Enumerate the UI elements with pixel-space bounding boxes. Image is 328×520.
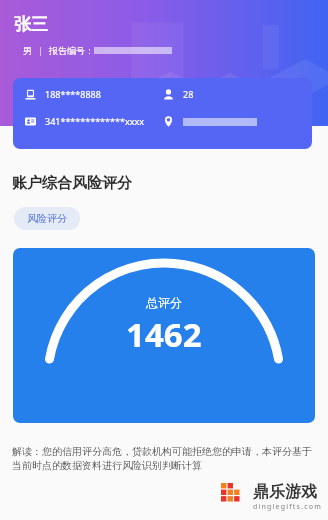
staticText: |	[38, 44, 43, 56]
staticText: 341*************xxxx	[45, 115, 144, 127]
staticText: 鼎乐游戏	[253, 482, 317, 502]
staticText: 张三	[14, 14, 48, 35]
staticText: 总评分	[146, 295, 182, 310]
staticText: 男	[23, 45, 32, 56]
staticText: 报告编号：	[49, 45, 94, 56]
staticText: 188****8888	[45, 88, 101, 100]
staticText: 1462	[126, 312, 202, 357]
staticText: dinglegifts.com	[253, 502, 322, 512]
staticText: 账户综合风险评分	[12, 174, 132, 193]
staticText: 解读：您的信用评分高危，贷款机构可能拒绝您的申请，本评分基于当前时点的数据资料进…	[12, 445, 316, 472]
staticText: 28	[183, 88, 194, 100]
staticText: 风险评分	[27, 212, 67, 225]
button[interactable]: 188****8888	[13, 78, 312, 149]
button[interactable]: 总评分	[13, 248, 315, 423]
button[interactable]: 风险评分	[14, 207, 80, 230]
